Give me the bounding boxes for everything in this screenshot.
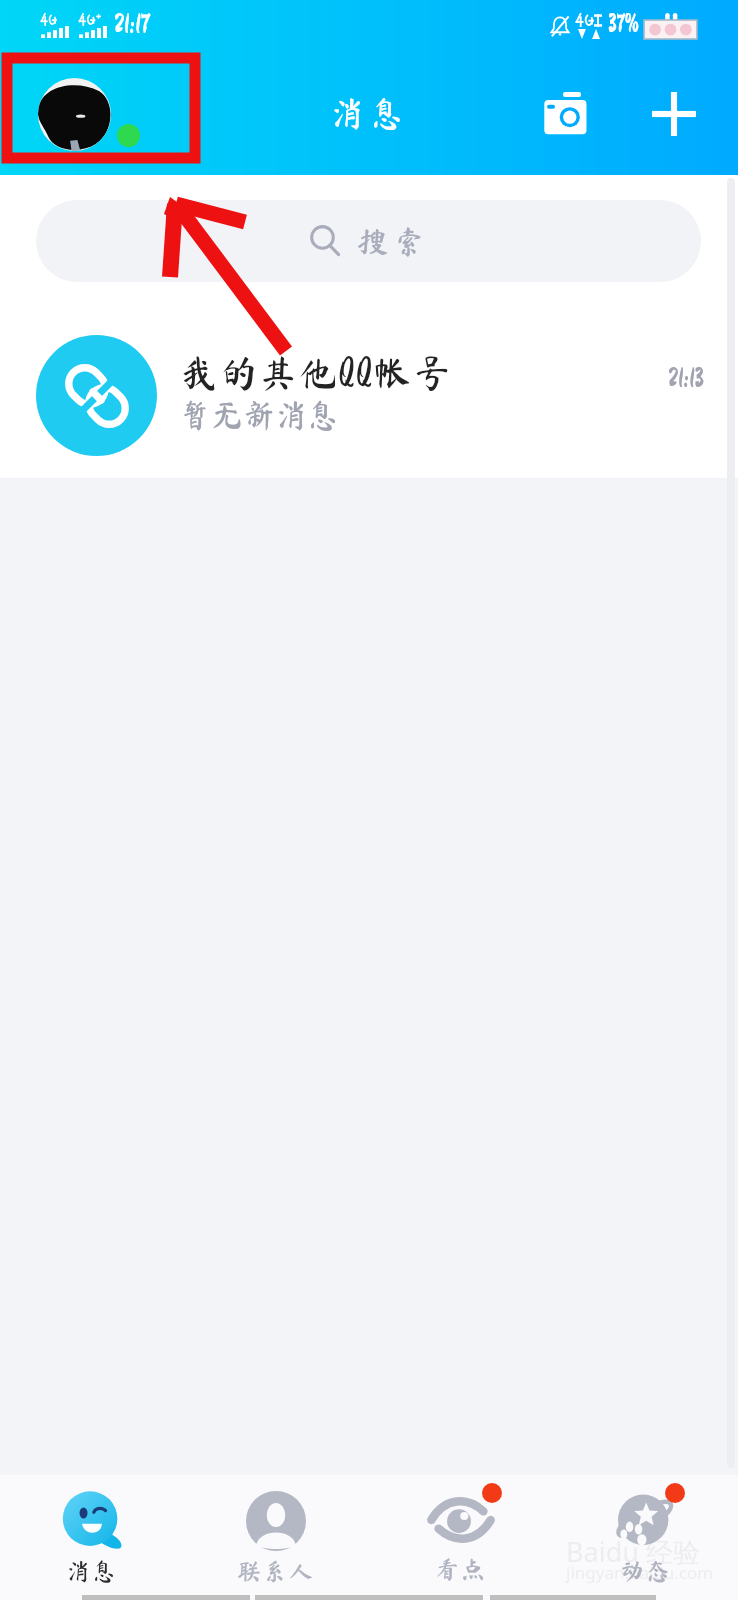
staticText: 动态 <box>620 1559 672 1583</box>
staticText: 暂无新消息 <box>179 399 340 431</box>
staticText: 搜索 <box>357 226 431 257</box>
staticText: Baidu 经验 <box>566 1533 700 1570</box>
button[interactable]: 联系人 <box>184 1475 368 1583</box>
button[interactable]: 消息 <box>0 1475 184 1583</box>
button[interactable]: Profile <box>38 78 111 151</box>
staticText: 21:13 <box>668 365 704 391</box>
staticText: 看点 <box>435 1557 487 1581</box>
staticText: 21:17 <box>114 11 150 37</box>
staticText: jingyan.baidu.com <box>566 1561 714 1584</box>
staticText: 37% <box>608 12 639 36</box>
staticText: 消息 <box>330 96 410 130</box>
button[interactable]: Add <box>638 78 710 150</box>
button[interactable]: 搜索 <box>36 200 701 282</box>
button[interactable]: 看点 <box>368 1475 553 1581</box>
staticText: 我的其他QQ帐号 <box>180 354 453 392</box>
button[interactable]: 动态 <box>553 1475 738 1583</box>
button[interactable]: 我的其他QQ帐号 <box>0 300 738 478</box>
staticText: 消息 <box>66 1559 118 1583</box>
button[interactable]: Camera <box>534 78 606 150</box>
staticText: 联系人 <box>237 1559 315 1583</box>
